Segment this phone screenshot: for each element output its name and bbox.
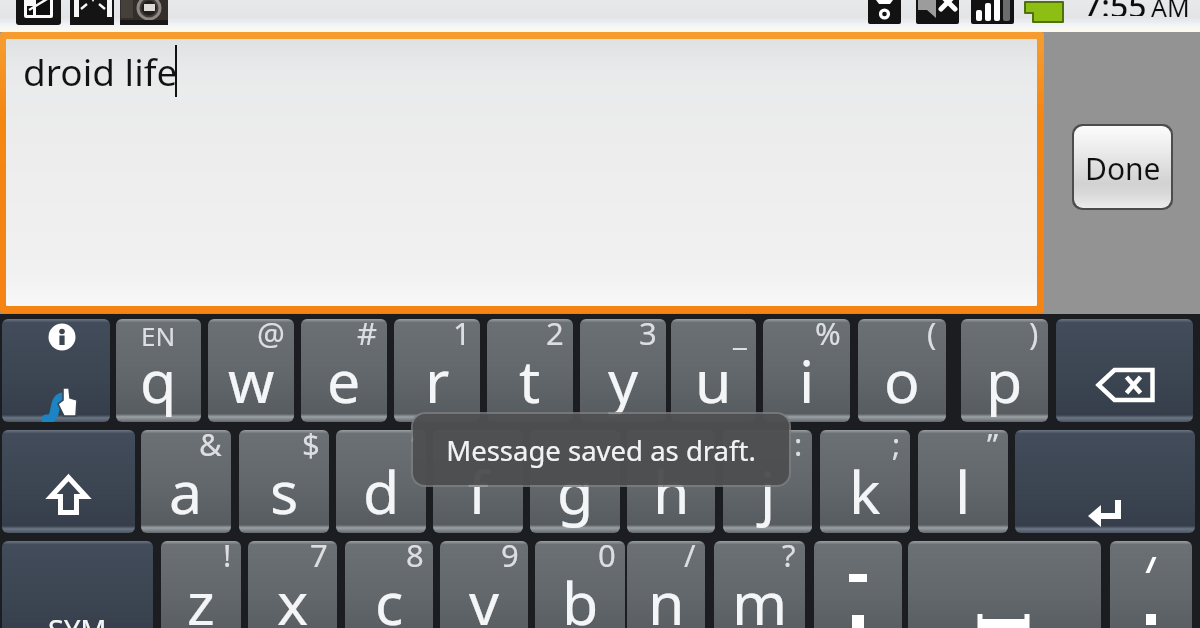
button[interactable]: q [116,319,201,422]
staticText: ? [782,541,796,576]
staticText: droid life [23,46,178,96]
button[interactable]: g [530,430,620,533]
staticText: y [608,340,639,420]
staticText: n [648,562,685,628]
staticText: 1 [453,319,471,354]
staticText: AM [1151,0,1190,22]
button[interactable]: p [961,319,1048,422]
staticText: t [519,340,541,420]
button[interactable]: Input method [2,319,110,422]
button[interactable]: droid life [6,39,1037,306]
staticText: u [695,340,732,420]
staticText: p [986,340,1023,420]
staticText: f [468,451,489,531]
button[interactable]: a [141,430,231,533]
button[interactable]: c [345,541,433,628]
button[interactable]: Delete [1056,319,1193,422]
staticText: d [363,451,400,531]
staticText: ‘ [411,430,417,465]
button[interactable]: v [440,541,528,628]
staticText: q [140,340,177,420]
button[interactable]: m [714,541,805,628]
staticText: m [732,562,788,628]
staticText: ) [1029,319,1039,354]
button[interactable]: h [627,430,715,533]
button[interactable]: Period [1110,541,1192,628]
button[interactable]: e [301,319,387,422]
staticText: e [327,340,361,420]
button[interactable]: z [161,541,241,628]
button[interactable]: f [433,430,523,533]
staticText: z [187,562,215,628]
staticText: 7 [310,541,328,576]
button[interactable]: Space [908,541,1101,628]
staticText: b [562,562,599,628]
button[interactable]: Enter [1015,430,1195,533]
staticText: $ [302,430,320,465]
staticText: h [653,451,690,531]
staticText: 8 [406,541,424,576]
button[interactable]: j [723,430,812,533]
button[interactable]: n [627,541,705,628]
staticText: SYM [48,610,107,628]
staticText: x [277,562,309,628]
staticText: ” [987,430,999,465]
staticText: r [425,340,450,420]
staticText: % [815,319,841,354]
staticText: 9 [501,541,519,576]
staticText: s [270,451,299,531]
staticText: _ [733,319,747,354]
staticText: j [760,451,776,531]
button[interactable]: w [208,319,294,422]
button[interactable]: Comma [814,541,902,628]
staticText: ( [927,319,937,354]
button[interactable]: t [487,319,573,422]
staticText: ! [223,541,232,576]
button[interactable]: SYM [2,541,153,628]
button[interactable]: r [394,319,480,422]
button[interactable]: y [580,319,666,422]
staticText: EN [141,319,176,353]
button[interactable]: o [858,319,946,422]
staticText: c [375,562,404,628]
button[interactable]: d [336,430,426,533]
staticText: Message saved as draft. [446,432,756,469]
staticText: a [169,451,203,531]
staticText: # [357,319,378,354]
button[interactable]: k [820,430,910,533]
staticText: ; [892,430,901,465]
staticText: v [469,562,499,628]
staticText: o [884,340,920,420]
staticText: 3 [639,319,657,354]
button[interactable]: Done [1074,126,1171,208]
staticText: g [557,451,594,531]
button[interactable]: b [535,541,625,628]
staticText: 2 [546,319,564,354]
button[interactable]: l [918,430,1008,533]
button[interactable]: s [239,430,329,533]
staticText: w [228,340,275,420]
staticText: Done [1085,148,1161,189]
staticText: l [955,451,971,531]
staticText: : [794,430,803,465]
staticText: k [849,451,881,531]
button[interactable]: x [248,541,337,628]
staticText: 7:55 [1083,0,1147,16]
button[interactable]: i [763,319,850,422]
staticText: 0 [598,541,616,576]
staticText: @ [257,319,285,354]
staticText: & [199,430,222,465]
button[interactable]: Shift [2,430,135,533]
staticText: / [684,541,696,576]
staticText: i [799,340,815,420]
button[interactable]: u [671,319,756,422]
